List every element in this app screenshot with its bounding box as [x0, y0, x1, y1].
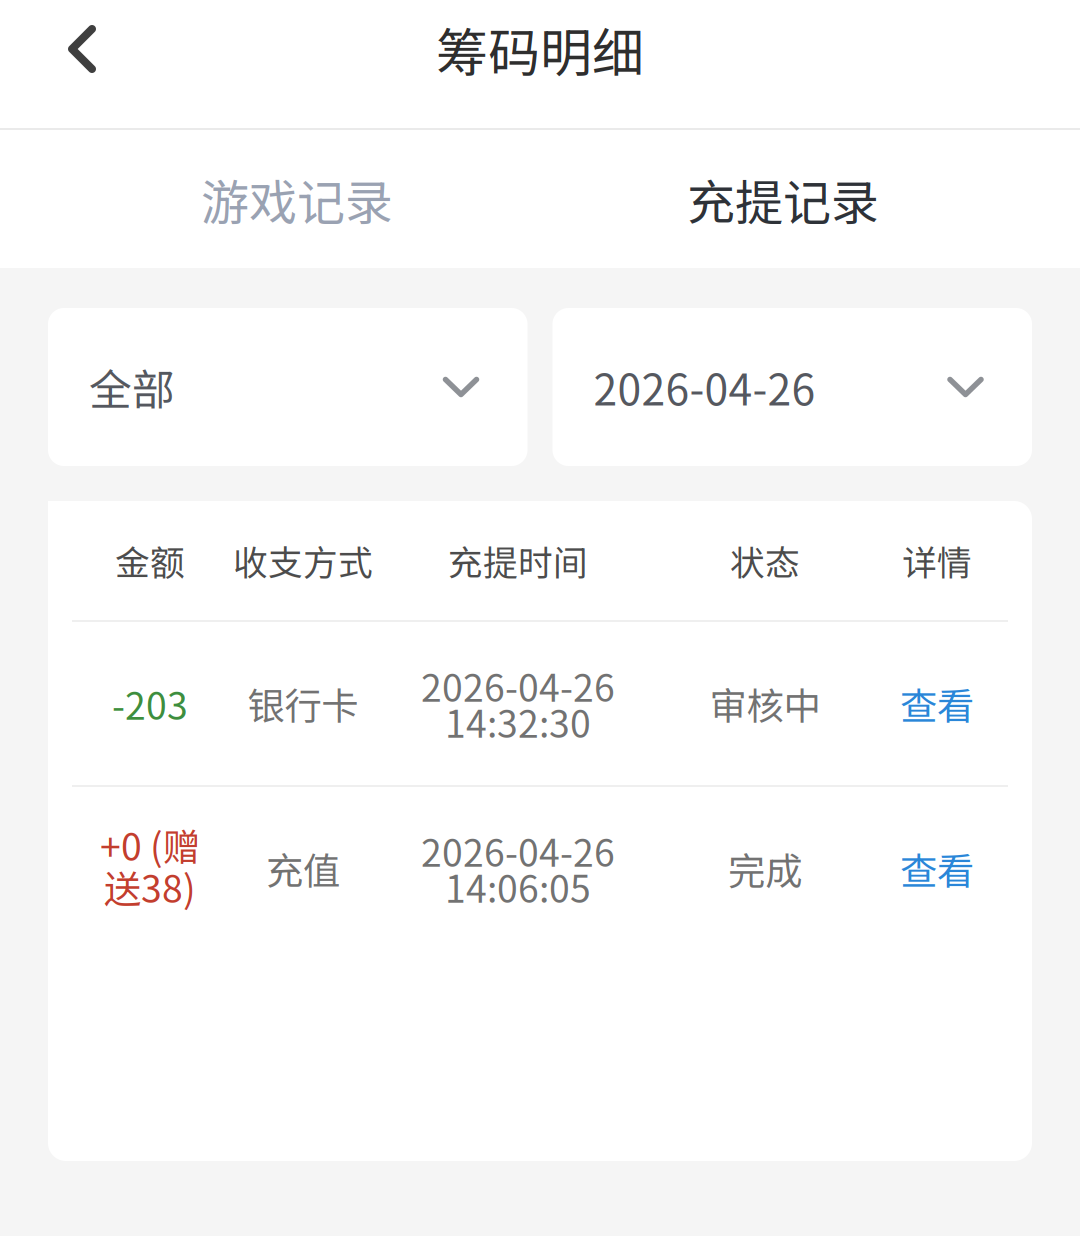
staticText: 银行卡: [247, 676, 358, 731]
staticText: 送38): [104, 859, 196, 914]
staticText: 充提记录: [687, 164, 879, 234]
staticText: -203: [112, 676, 188, 731]
staticText: 充提时间: [448, 535, 588, 586]
staticText: 游戏记录: [201, 164, 393, 234]
staticText: 筹码明细: [436, 11, 644, 87]
staticText: 状态: [730, 535, 800, 586]
staticText: 充值: [266, 841, 340, 896]
button[interactable]: 充提记录: [540, 130, 1026, 268]
staticText: 14:06:05: [445, 859, 591, 914]
button[interactable]: 游戏记录: [54, 130, 540, 268]
staticText: 详情: [902, 535, 972, 586]
staticText: +0 (赠: [100, 817, 200, 871]
staticText: 2026-04-26: [421, 823, 615, 877]
staticText: 2026-04-26: [593, 356, 815, 418]
button[interactable]: Back: [0, 0, 164, 98]
staticText: 查看: [900, 676, 974, 731]
staticText: 2026-04-26: [421, 658, 615, 712]
button[interactable]: 2026-04-26: [552, 308, 1032, 466]
button[interactable]: 查看: [898, 622, 976, 785]
staticText: 查看: [900, 841, 974, 896]
staticText: 金额: [115, 535, 185, 586]
staticText: 完成: [728, 841, 802, 896]
staticText: 审核中: [709, 676, 820, 731]
button[interactable]: 查看: [898, 787, 976, 950]
staticText: 收支方式: [233, 535, 373, 586]
staticText: 14:32:30: [445, 694, 591, 749]
button[interactable]: 全部: [48, 308, 527, 466]
staticText: 全部: [89, 356, 175, 418]
